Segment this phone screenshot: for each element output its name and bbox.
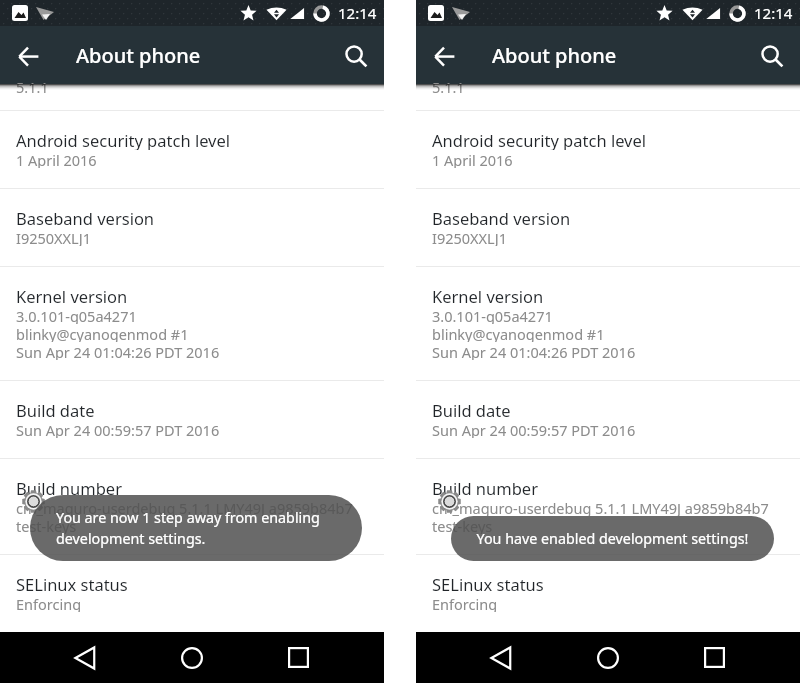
staticText: Build number bbox=[16, 477, 122, 498]
button[interactable]: Search bbox=[744, 27, 800, 83]
staticText: SELinux status bbox=[432, 573, 544, 594]
button[interactable]: Kernel version bbox=[0, 267, 384, 380]
staticText: Kernel version bbox=[16, 285, 128, 306]
button[interactable]: Build date bbox=[0, 381, 384, 458]
staticText: Kernel version bbox=[432, 285, 544, 306]
staticText: Build date bbox=[432, 399, 511, 420]
staticText: Android security patch level bbox=[16, 129, 231, 150]
staticText: cm_maguro-userdebug 5.1.1 LMY49J a9859b8… bbox=[16, 498, 353, 516]
staticText: SELinux status bbox=[16, 573, 128, 594]
button[interactable]: Android security patch level bbox=[0, 111, 384, 188]
button[interactable]: Build date bbox=[416, 381, 800, 458]
button[interactable]: Baseband version bbox=[416, 189, 800, 266]
staticText: Baseband version bbox=[432, 207, 571, 228]
button[interactable]: Navigate up bbox=[0, 27, 56, 83]
staticText: 1 April 2016 bbox=[16, 150, 97, 168]
staticText: 5.1.1 bbox=[16, 77, 49, 97]
staticText: You have enabled development settings! bbox=[471, 529, 754, 548]
staticText: Android security patch level bbox=[432, 129, 647, 150]
staticText: blinky@cyanogenmod #1 bbox=[432, 324, 605, 342]
staticText: Build date bbox=[16, 399, 95, 420]
button[interactable]: Recent apps bbox=[692, 632, 736, 683]
button[interactable]: Search bbox=[328, 27, 384, 83]
button[interactable]: Home bbox=[586, 632, 630, 683]
button[interactable]: Recent apps bbox=[276, 632, 320, 683]
button[interactable]: Android security patch level bbox=[416, 111, 800, 188]
staticText: About phone bbox=[492, 42, 617, 69]
staticText: cm_maguro-userdebug 5.1.1 LMY49J a9859b8… bbox=[432, 498, 769, 516]
staticText: Enforcing bbox=[16, 594, 82, 612]
button[interactable]: SELinux status bbox=[416, 555, 800, 632]
staticText: I9250XXLJ1 bbox=[16, 228, 91, 246]
staticText: Sun Apr 24 01:04:26 PDT 2016 bbox=[16, 342, 220, 360]
button[interactable]: Back bbox=[63, 632, 107, 683]
staticText: Sun Apr 24 00:59:57 PDT 2016 bbox=[432, 420, 636, 438]
staticText: You are now 1 step away from enabling de… bbox=[56, 508, 336, 549]
staticText: 12:14 bbox=[338, 3, 377, 23]
button[interactable]: Kernel version bbox=[416, 267, 800, 380]
button[interactable]: Build number bbox=[416, 459, 800, 554]
staticText: 5.1.1 bbox=[432, 77, 465, 97]
staticText: Build number bbox=[432, 477, 538, 498]
staticText: Baseband version bbox=[16, 207, 155, 228]
button[interactable]: Baseband version bbox=[0, 189, 384, 266]
button[interactable]: Build number bbox=[0, 459, 384, 554]
staticText: 1 April 2016 bbox=[432, 150, 513, 168]
staticText: test-keys bbox=[16, 516, 77, 534]
staticText: blinky@cyanogenmod #1 bbox=[16, 324, 189, 342]
staticText: 3.0.101-g05a4271 bbox=[16, 306, 137, 324]
staticText: I9250XXLJ1 bbox=[432, 228, 507, 246]
button[interactable]: Back bbox=[479, 632, 523, 683]
button[interactable]: Home bbox=[170, 632, 214, 683]
staticText: Sun Apr 24 00:59:57 PDT 2016 bbox=[16, 420, 220, 438]
staticText: Enforcing bbox=[432, 594, 498, 612]
button[interactable]: Navigate up bbox=[416, 27, 472, 83]
staticText: 12:14 bbox=[754, 3, 793, 23]
staticText: Sun Apr 24 01:04:26 PDT 2016 bbox=[432, 342, 636, 360]
button[interactable]: SELinux status bbox=[0, 555, 384, 632]
staticText: test-keys bbox=[432, 516, 493, 534]
staticText: 3.0.101-g05a4271 bbox=[432, 306, 553, 324]
staticText: About phone bbox=[76, 42, 201, 69]
